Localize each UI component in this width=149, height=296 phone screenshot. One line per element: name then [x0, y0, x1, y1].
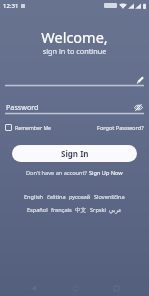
button[interactable]: Edit: [5, 74, 144, 87]
staticText: Sign In: [61, 148, 89, 159]
staticText: Welcome,: [0, 27, 149, 47]
button[interactable]: Sign Up Now: [89, 169, 123, 177]
staticText: sign in to continue: [0, 46, 149, 56]
other: Edit: [135, 75, 144, 84]
button[interactable]: français: [51, 206, 72, 214]
button[interactable]: čeština: [47, 193, 66, 201]
button[interactable]: Forgot Password?: [97, 124, 144, 132]
button[interactable]: English: [24, 193, 44, 201]
button[interactable]: 中文: [75, 207, 87, 214]
button[interactable]: Remember Me: [5, 124, 52, 131]
staticText: 12:31: [3, 2, 19, 10]
button[interactable]: Español: [27, 206, 48, 214]
button[interactable]: Srpski: [90, 206, 106, 214]
button[interactable]: Password: [5, 102, 144, 115]
button[interactable]: عربي: [109, 207, 122, 214]
button[interactable]: Slovenščina: [94, 193, 125, 201]
staticText: Don't have an account?: [26, 169, 89, 177]
staticText: Remember Me: [15, 124, 52, 131]
staticText: Password: [6, 102, 39, 112]
button[interactable]: Sign In: [12, 145, 137, 162]
button[interactable]: русский: [69, 193, 91, 201]
other: Show password: [133, 102, 144, 113]
